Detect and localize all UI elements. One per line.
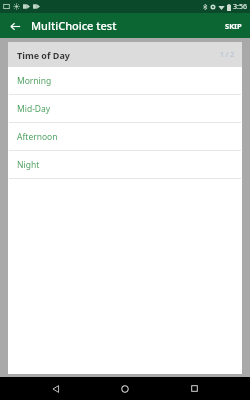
button[interactable]: Back xyxy=(43,377,69,400)
staticText: 1 / 2 xyxy=(220,50,235,60)
button[interactable]: Back xyxy=(4,15,26,37)
staticText: SKIP xyxy=(225,21,242,31)
button[interactable]: Morning xyxy=(8,67,242,94)
staticText: MultiChoice test xyxy=(31,18,117,33)
staticText: Night xyxy=(17,159,40,171)
staticText: Morning xyxy=(17,75,52,87)
button[interactable]: Recent apps xyxy=(181,377,207,400)
button[interactable]: Night xyxy=(8,151,242,178)
staticText: Time of Day xyxy=(17,49,70,61)
button[interactable]: SKIP xyxy=(217,13,250,38)
staticText: Afternoon xyxy=(17,131,58,143)
staticText: 3:56 xyxy=(233,2,247,12)
button[interactable]: Afternoon xyxy=(8,123,242,150)
button[interactable]: Home xyxy=(112,377,138,400)
staticText: Mid-Day xyxy=(17,103,51,115)
button[interactable]: Mid-Day xyxy=(8,95,242,122)
